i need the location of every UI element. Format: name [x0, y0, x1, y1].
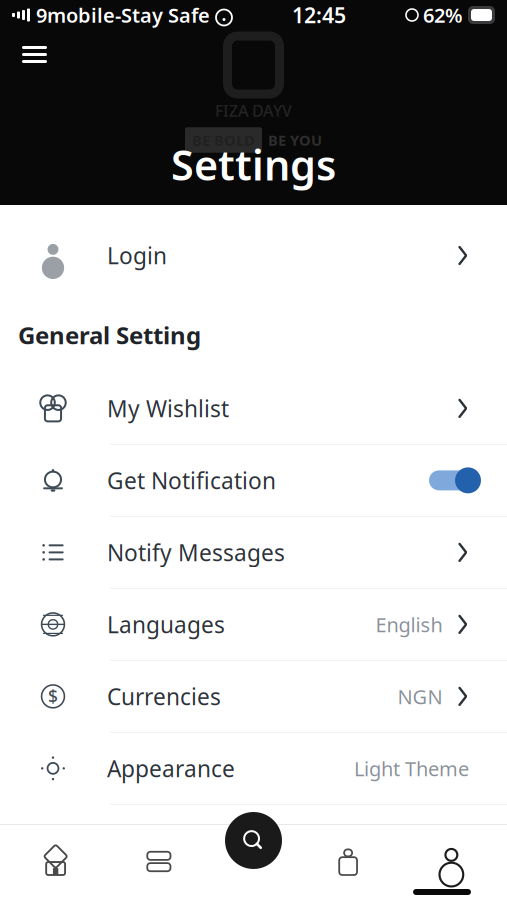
button[interactable]: Notify Messages: [0, 517, 507, 589]
staticText: Notify Messages: [107, 537, 285, 567]
button[interactable]: Cart: [296, 838, 400, 885]
staticText: Light Theme: [354, 755, 469, 782]
button[interactable]: Rate the app: [0, 805, 507, 877]
staticText: Languages: [107, 609, 225, 639]
button[interactable]: My Wishlist: [0, 373, 507, 445]
staticText: $: [48, 685, 58, 708]
button[interactable]: Search: [225, 812, 282, 869]
staticText: Get Notification: [107, 465, 276, 495]
staticText: BE BOLD: [192, 130, 255, 150]
staticText: Currencies: [107, 681, 221, 711]
staticText: 12:45: [292, 1, 346, 29]
button[interactable]: Login: [0, 220, 507, 291]
staticText: FIZA DAYV: [215, 100, 292, 121]
button[interactable]: $: [0, 661, 507, 733]
staticText: English: [375, 611, 442, 638]
staticText: My Wishlist: [107, 393, 229, 423]
staticText: Appearance: [107, 753, 235, 783]
button[interactable]: Categories: [107, 838, 210, 885]
staticText: Login: [107, 240, 167, 270]
button[interactable]: Get Notification: [0, 445, 507, 517]
staticText: 9mobile-Stay Safe: [36, 2, 210, 28]
button[interactable]: Menu: [12, 36, 57, 73]
staticText: Rate the app: [107, 825, 243, 855]
button[interactable]: Account: [400, 838, 503, 885]
staticText: Settings: [171, 137, 336, 192]
button[interactable]: Home: [4, 838, 107, 885]
staticText: 62%: [423, 2, 463, 28]
staticText: General Setting: [18, 319, 201, 351]
button[interactable]: Appearance: [0, 733, 507, 805]
staticText: NGN: [397, 683, 442, 710]
staticText: BE YOU: [268, 130, 322, 150]
button[interactable]: Languages: [0, 589, 507, 661]
